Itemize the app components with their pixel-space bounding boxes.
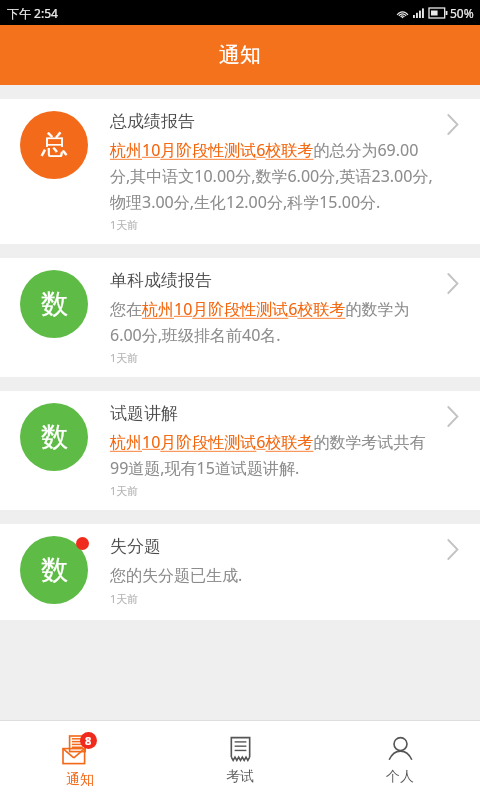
button[interactable]: 考试 [160,736,320,786]
staticText: 8 [85,733,92,748]
button[interactable]: 通知 [0,732,160,789]
button[interactable]: 数 [0,258,480,377]
staticText: 杭州10月阶段性测试6校联考的数学考试共有99道题,现有15道试题讲解. [110,431,438,478]
staticText: 通知 [219,42,261,68]
staticText: 失分题 [110,536,161,557]
staticText: 1天前 [110,350,139,365]
staticText: 杭州10月阶段性测试6校联考的总分为69.00分,其中语文10.00分,数学6.… [110,139,438,212]
button[interactable]: 总 [0,99,480,244]
staticText: 1天前 [110,483,139,498]
staticText: 下午 2:54 [7,5,58,21]
staticText: 您在杭州10月阶段性测试6校联考的数学为 6.00分,班级排名前40名. [110,298,438,345]
staticText: 通知 [66,771,94,789]
staticText: 总 [41,128,68,162]
staticText: 数 [41,553,68,587]
staticText: 50% [450,5,474,21]
button[interactable]: 个人 [320,736,480,786]
staticText: 数 [41,420,68,454]
staticText: 数 [41,287,68,321]
button[interactable]: 数 [0,524,480,620]
staticText: 个人 [386,768,414,786]
staticText: 考试 [226,768,254,786]
staticText: 试题讲解 [110,403,178,424]
staticText: 单科成绩报告 [110,270,212,291]
staticText: 总成绩报告 [110,111,195,132]
button[interactable]: 数 [0,391,480,510]
staticText: 1天前 [110,591,139,606]
staticText: 1天前 [110,217,139,232]
staticText: 您的失分题已生成. [110,564,243,586]
